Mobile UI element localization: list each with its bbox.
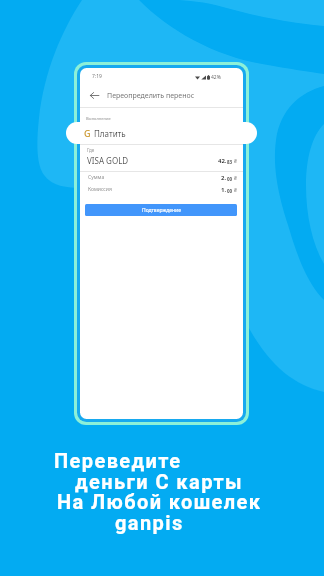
staticText: Комиссия [88,186,112,193]
staticText: Переведите [54,449,182,472]
staticText: На Любой кошелек [57,490,262,513]
button[interactable]: Back [89,90,100,101]
staticText: 1. [221,186,227,194]
staticText: 7:19 [92,73,102,80]
staticText: ₴ [234,158,237,165]
staticText: 42. [218,157,227,165]
staticText: ₴ [234,175,237,182]
staticText: Подтверждение [142,207,181,214]
staticText: 42% [211,74,221,81]
staticText: 83 [227,159,233,165]
staticText: Сумма [88,174,105,181]
button[interactable]: Подтверждение [85,204,237,216]
staticText: Где [87,147,95,153]
staticText: 00 [227,188,233,194]
staticText: G [84,127,91,139]
button[interactable]: G [66,122,257,144]
staticText: 00 [227,176,233,182]
staticText: VISA GOLD [87,155,129,166]
staticText: Выполнение [86,116,111,121]
staticText: Переопределить перенос [107,91,195,101]
staticText: 2. [221,174,227,182]
staticText: ₴ [234,187,237,194]
staticText: Платить [94,128,126,139]
staticText: деньги С карты [75,470,243,493]
staticText: ganpis [115,511,184,534]
